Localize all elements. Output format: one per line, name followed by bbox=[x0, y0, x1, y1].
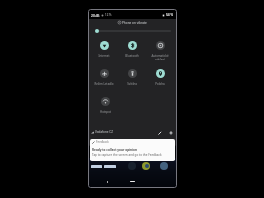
button[interactable]: Feedback bbox=[90, 139, 175, 161]
staticText: Vodafone CZ bbox=[95, 130, 113, 134]
staticText: Tap to capture the screen and go to the … bbox=[92, 153, 162, 157]
staticText: 12 % bbox=[105, 13, 112, 17]
staticText: Feedback bbox=[96, 140, 109, 144]
staticText: 54 % bbox=[166, 13, 174, 17]
button[interactable]: Edit tiles bbox=[156, 129, 163, 136]
staticText: Svítilna bbox=[127, 82, 137, 86]
staticText: Ready to collect your opinion bbox=[92, 148, 137, 152]
staticText: Bluetooth bbox=[125, 54, 139, 58]
button[interactable]: Režim Letadlo bbox=[90, 69, 118, 88]
staticText: Internet bbox=[98, 54, 110, 58]
button[interactable]: Internet bbox=[90, 41, 118, 60]
staticText: Automatické otáčení bbox=[151, 54, 169, 60]
button[interactable]: Svítilna bbox=[118, 69, 146, 88]
button[interactable]: Poloha bbox=[146, 69, 174, 88]
button[interactable]: Bluetooth bbox=[118, 41, 146, 60]
staticText: Phone on vibrate bbox=[122, 21, 147, 25]
button[interactable]: Hotspot bbox=[91, 97, 119, 116]
staticText: Hotspot bbox=[100, 110, 111, 114]
staticText: 20:45 bbox=[91, 13, 100, 17]
staticText: Režim Letadlo bbox=[94, 82, 114, 86]
button[interactable]: Settings bbox=[167, 129, 174, 136]
button[interactable]: Automatické otáčení bbox=[146, 41, 174, 60]
staticText: Poloha bbox=[155, 82, 165, 86]
